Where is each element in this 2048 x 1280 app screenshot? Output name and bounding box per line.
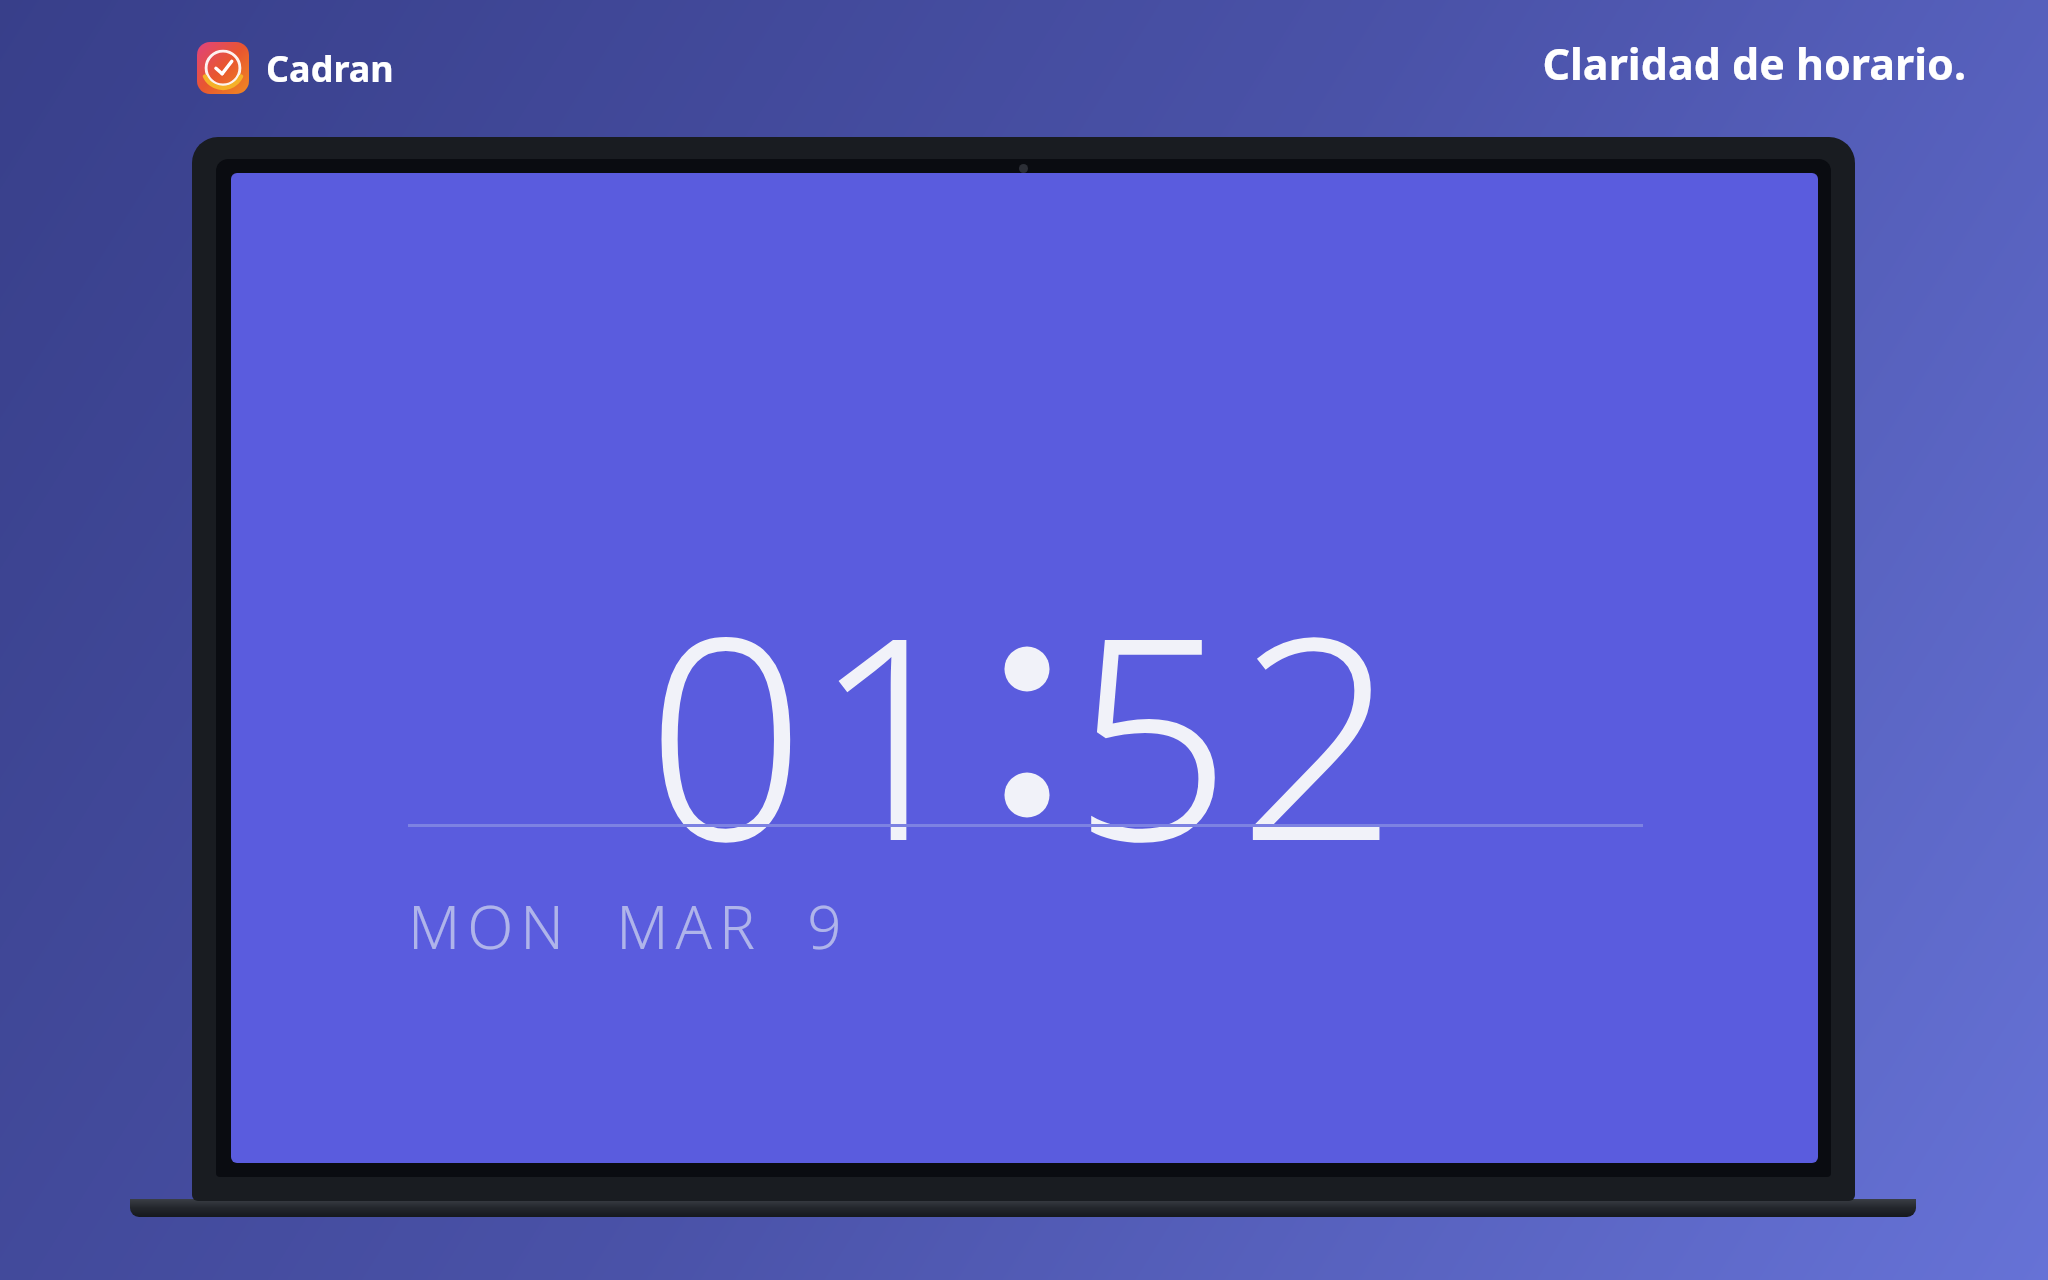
staticText: Claridad de horario. [1542, 34, 1966, 93]
staticText: 52 [1072, 541, 1404, 922]
staticText: Cadran [266, 44, 394, 93]
button[interactable]: MON MAR 9 [408, 885, 849, 967]
other: Cadran app icon [197, 42, 249, 94]
button[interactable]: 01 [231, 541, 1818, 922]
button[interactable]: Cadran app icon [197, 42, 394, 94]
staticText: 01 [646, 541, 978, 922]
